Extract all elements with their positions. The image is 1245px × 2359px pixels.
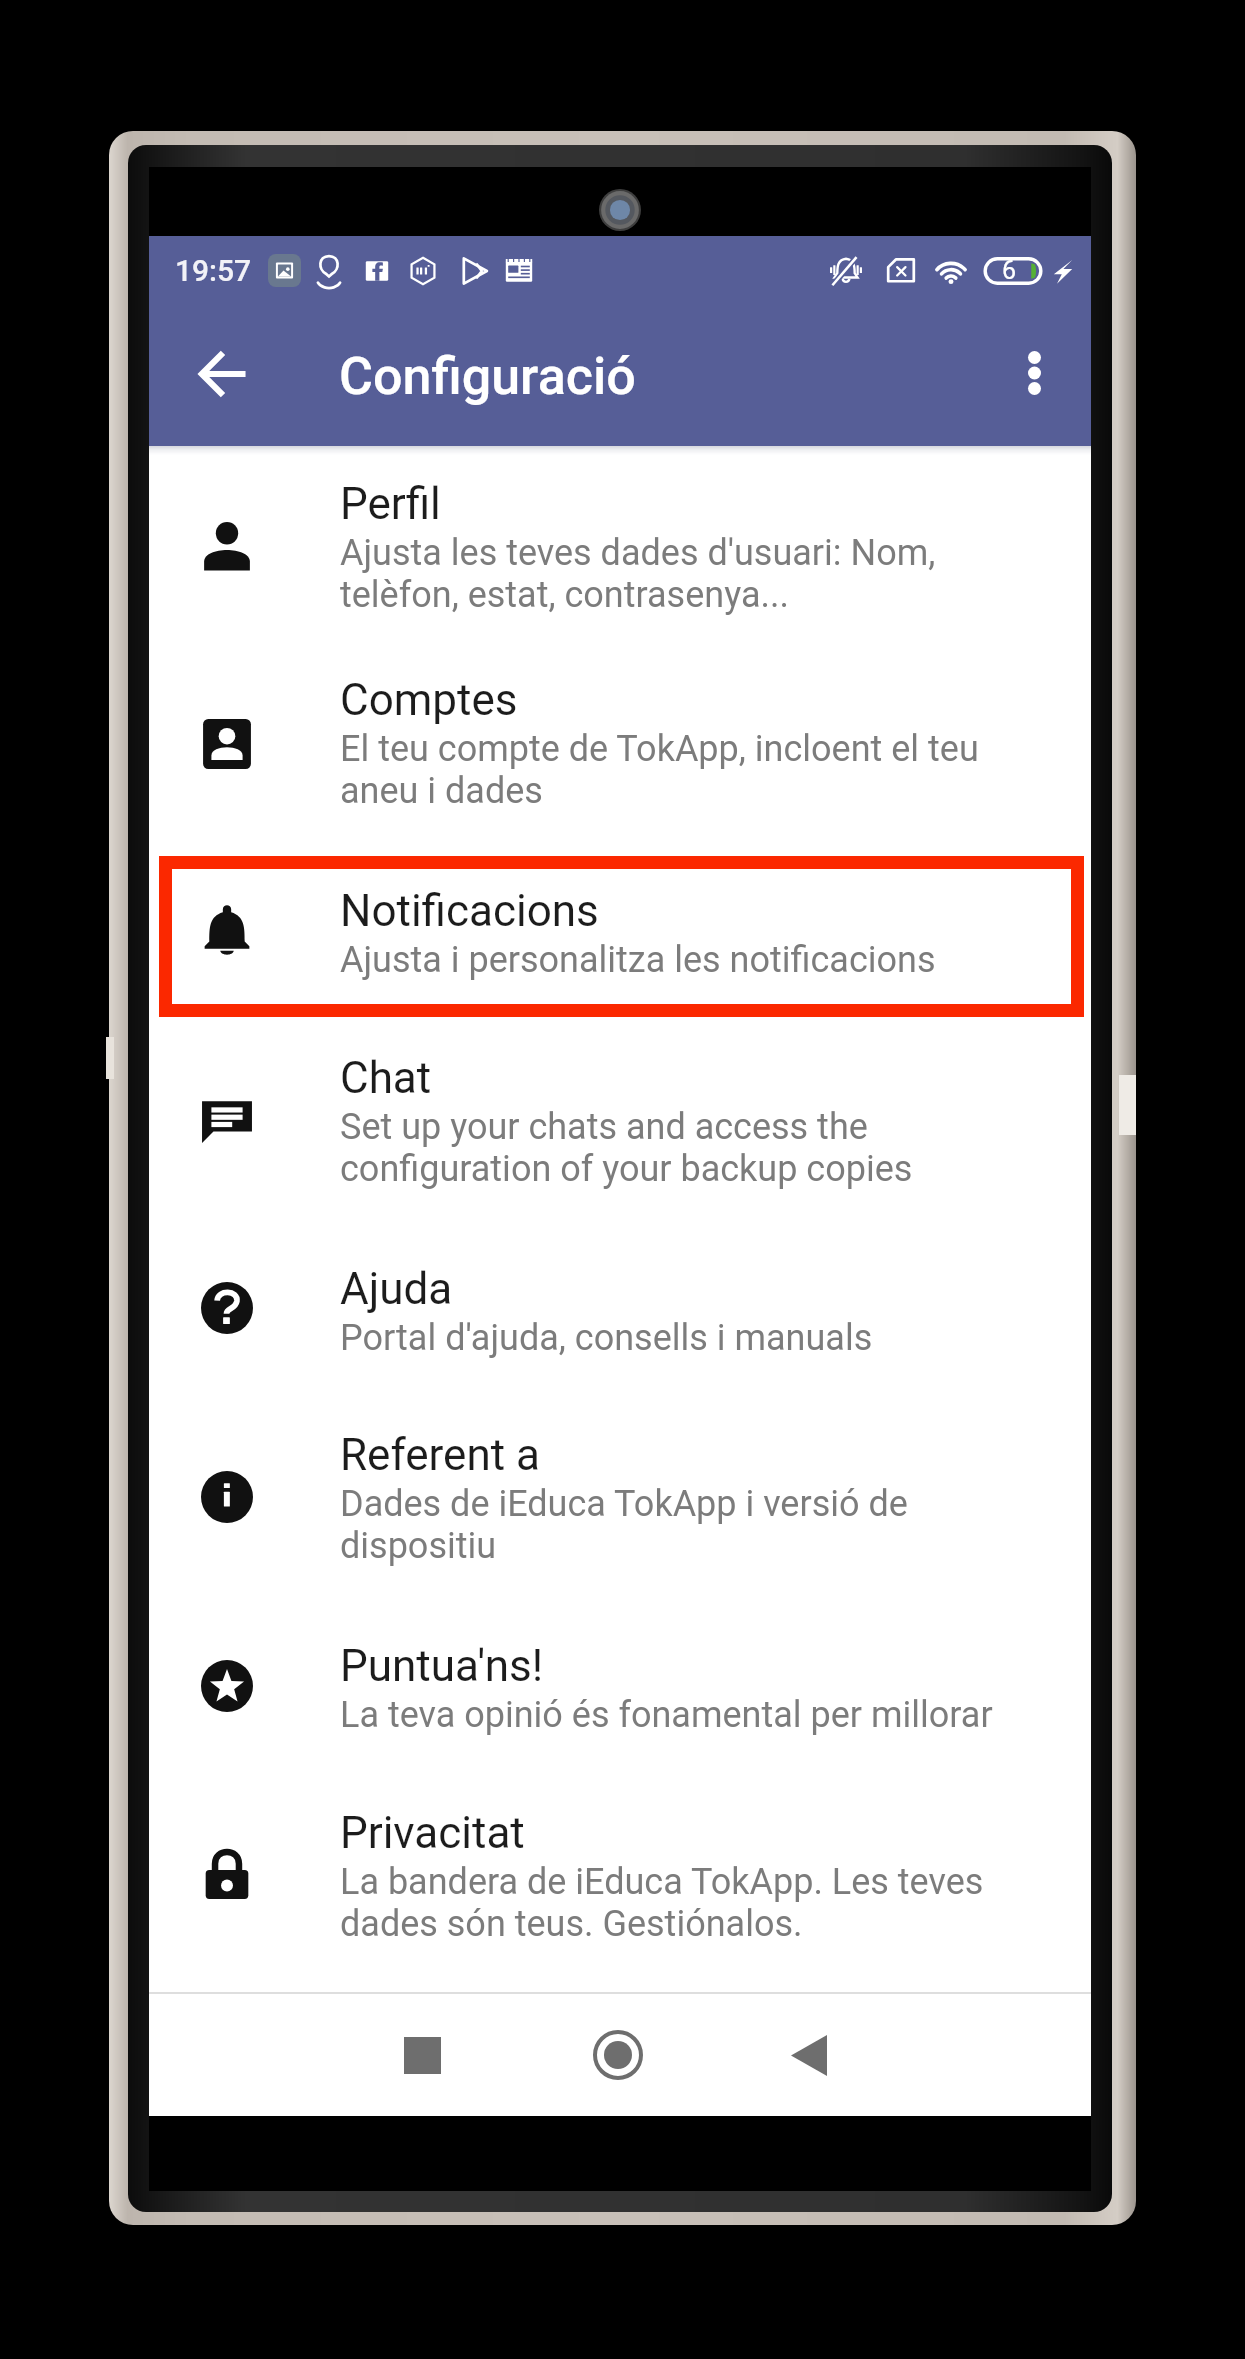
staticText: aneu i dades — [340, 770, 543, 812]
button[interactable]: Chat — [149, 1020, 1091, 1231]
staticText: La bandera de iEduca TokApp. Les teves — [340, 1861, 984, 1903]
staticText: telèfon, estat, contrasenya... — [340, 574, 789, 616]
staticText: dades són teus. Gestiónalos. — [340, 1903, 803, 1945]
staticText: Configuració — [339, 346, 636, 407]
staticText: Ajuda — [340, 1263, 453, 1315]
button[interactable]: Recent apps — [370, 2003, 474, 2107]
staticText: La teva opinió és fonamental per millora… — [340, 1694, 993, 1736]
staticText: dispositiu — [340, 1525, 497, 1567]
staticText: Set up your chats and access the — [340, 1106, 868, 1148]
button[interactable]: Ajuda — [149, 1231, 1091, 1397]
button[interactable]: Home — [566, 2003, 670, 2107]
staticText: Ajusta les teves dades d'usuari: Nom, — [340, 532, 936, 574]
button[interactable]: More options — [986, 325, 1082, 421]
staticText: 6 — [1002, 256, 1017, 285]
button[interactable]: Perfil — [149, 446, 1091, 642]
button[interactable]: Notificacions — [149, 853, 1091, 1020]
staticText: Comptes — [340, 674, 518, 726]
staticText: Chat — [340, 1052, 432, 1104]
staticText: Puntua'ns! — [340, 1640, 544, 1692]
staticText: Referent a — [340, 1429, 540, 1481]
staticText: Portal d'ajuda, consells i manuals — [340, 1317, 873, 1359]
staticText: Privacitat — [340, 1807, 525, 1859]
staticText: configuration of your backup copies — [340, 1148, 913, 1190]
staticText: Perfil — [340, 478, 441, 530]
staticText: El teu compte de TokApp, incloent el teu — [340, 728, 979, 770]
button[interactable]: Referent a — [149, 1397, 1091, 1608]
button[interactable]: Privacitat — [149, 1775, 1091, 1986]
staticText: 19:57 — [175, 253, 252, 288]
staticText: Ajusta i personalitza les notificacions — [340, 939, 936, 981]
button[interactable]: Puntua'ns! — [149, 1608, 1091, 1775]
button[interactable]: Back — [175, 328, 271, 424]
staticText: Dades de iEduca TokApp i versió de — [340, 1483, 908, 1525]
button[interactable]: Back — [757, 2003, 861, 2107]
staticText: Notificacions — [340, 885, 599, 937]
button[interactable]: Comptes — [149, 642, 1091, 853]
